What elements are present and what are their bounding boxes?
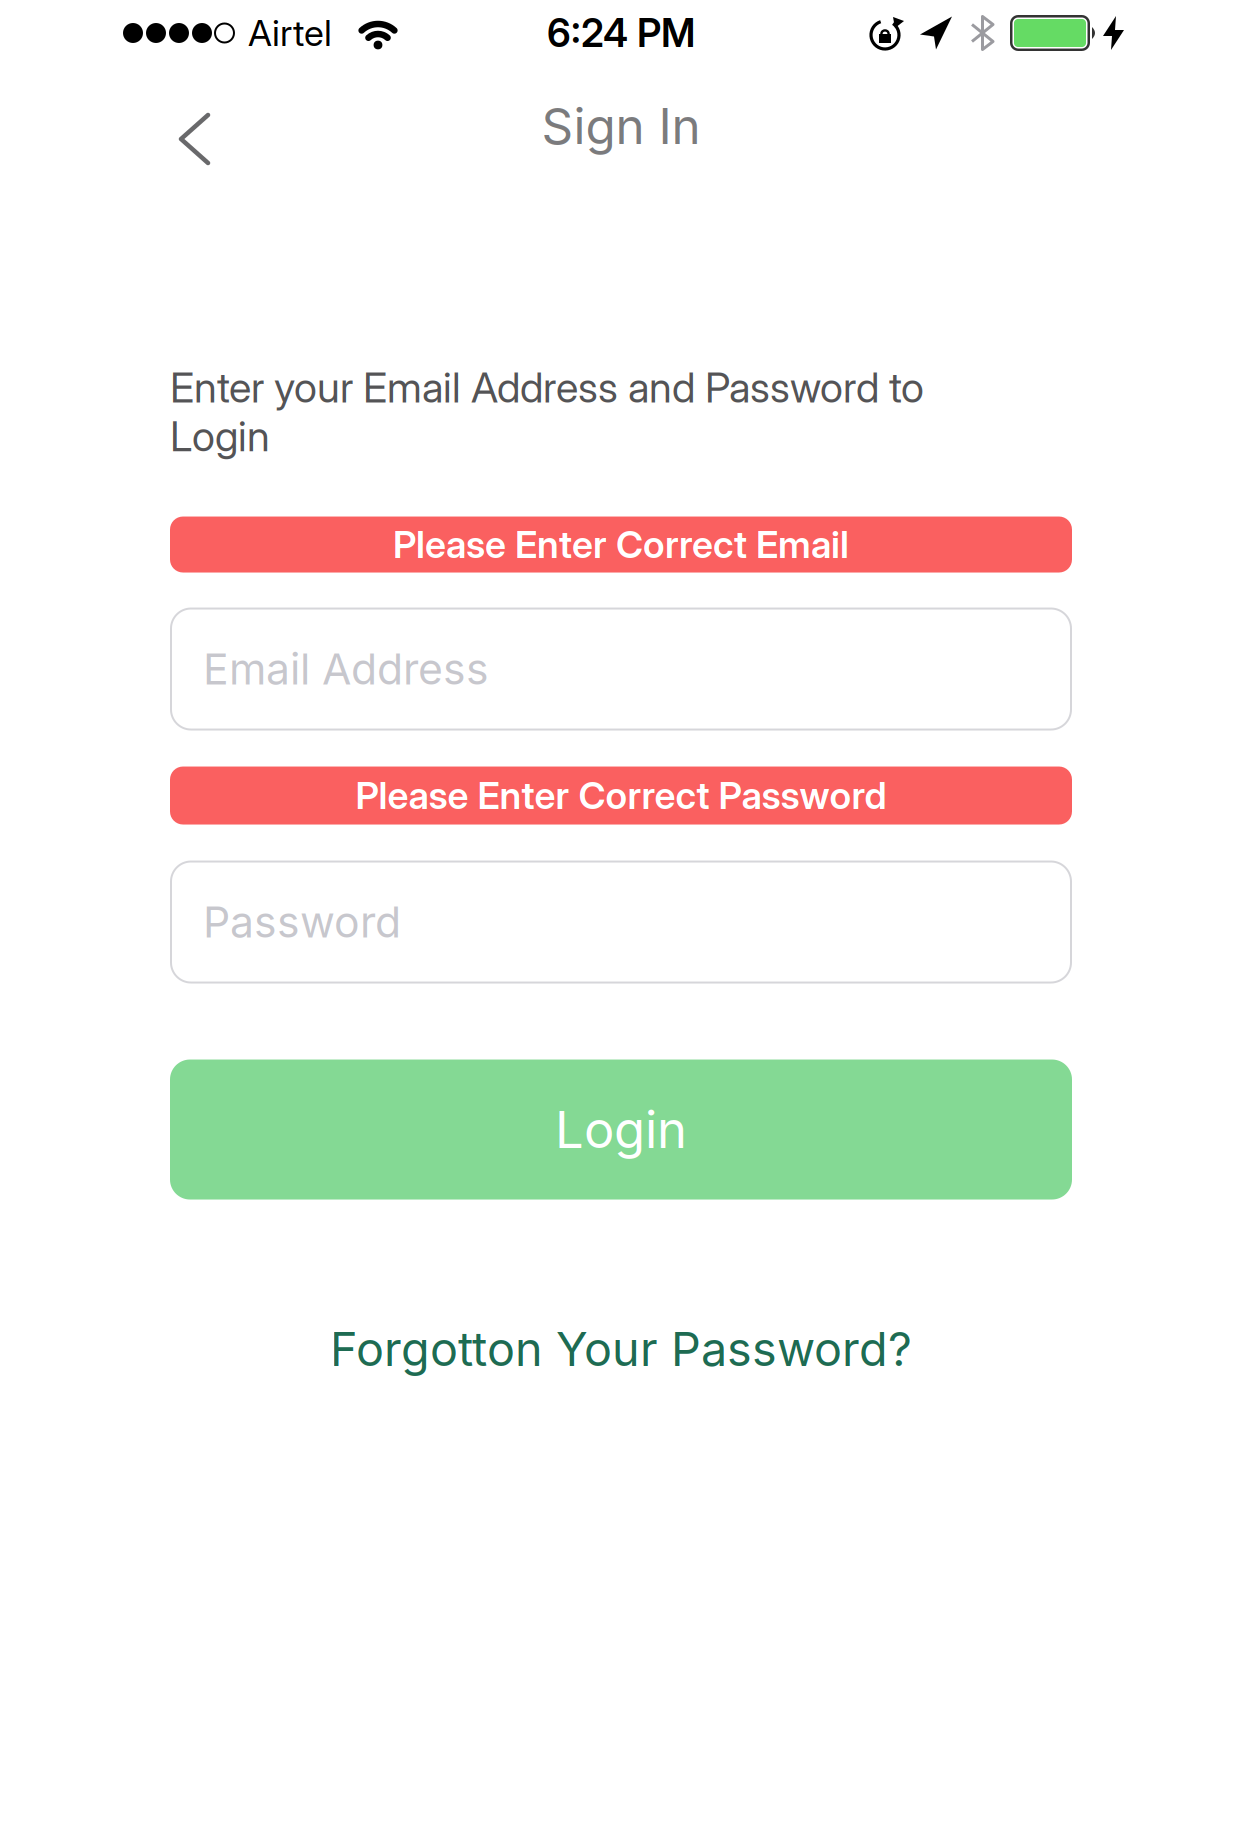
button[interactable]: Password [170,860,1072,983]
staticText: Please Enter Correct Email [393,522,849,566]
staticText: Password [203,897,401,947]
staticText: Email Address [203,644,489,694]
staticText: Airtel [248,12,332,54]
button[interactable]: Email Address [170,607,1072,730]
staticText: Login [555,1100,687,1159]
button[interactable]: Back [0,80,242,172]
staticText: Forgotton Your Password? [330,1321,912,1377]
staticText: 6:24 PM [547,10,695,56]
button[interactable]: Forgotton Your Password? [330,1321,912,1377]
staticText: Enter your Email Address and Password to… [170,363,924,460]
staticText: Please Enter Correct Password [355,773,886,817]
staticText: Sign In [541,97,700,155]
button[interactable]: Login [170,1059,1072,1199]
